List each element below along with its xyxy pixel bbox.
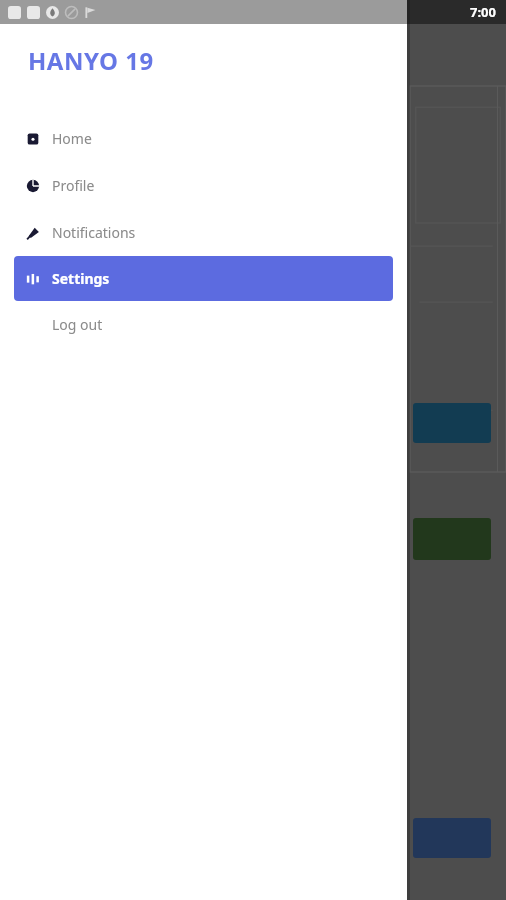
staticText: HANYO 19: [28, 44, 154, 77]
staticText: Home: [52, 129, 92, 148]
button[interactable]: Notifications: [14, 209, 393, 256]
staticText: Settings: [52, 269, 110, 288]
staticText: Log out: [52, 315, 103, 334]
staticText: Profile: [52, 176, 95, 195]
staticText: 7:00: [470, 3, 496, 21]
button[interactable]: Home: [14, 115, 393, 162]
staticText: Notifications: [52, 223, 136, 242]
button[interactable]: Settings: [14, 256, 393, 301]
button[interactable]: Log out: [14, 301, 393, 348]
button[interactable]: Profile: [14, 162, 393, 209]
